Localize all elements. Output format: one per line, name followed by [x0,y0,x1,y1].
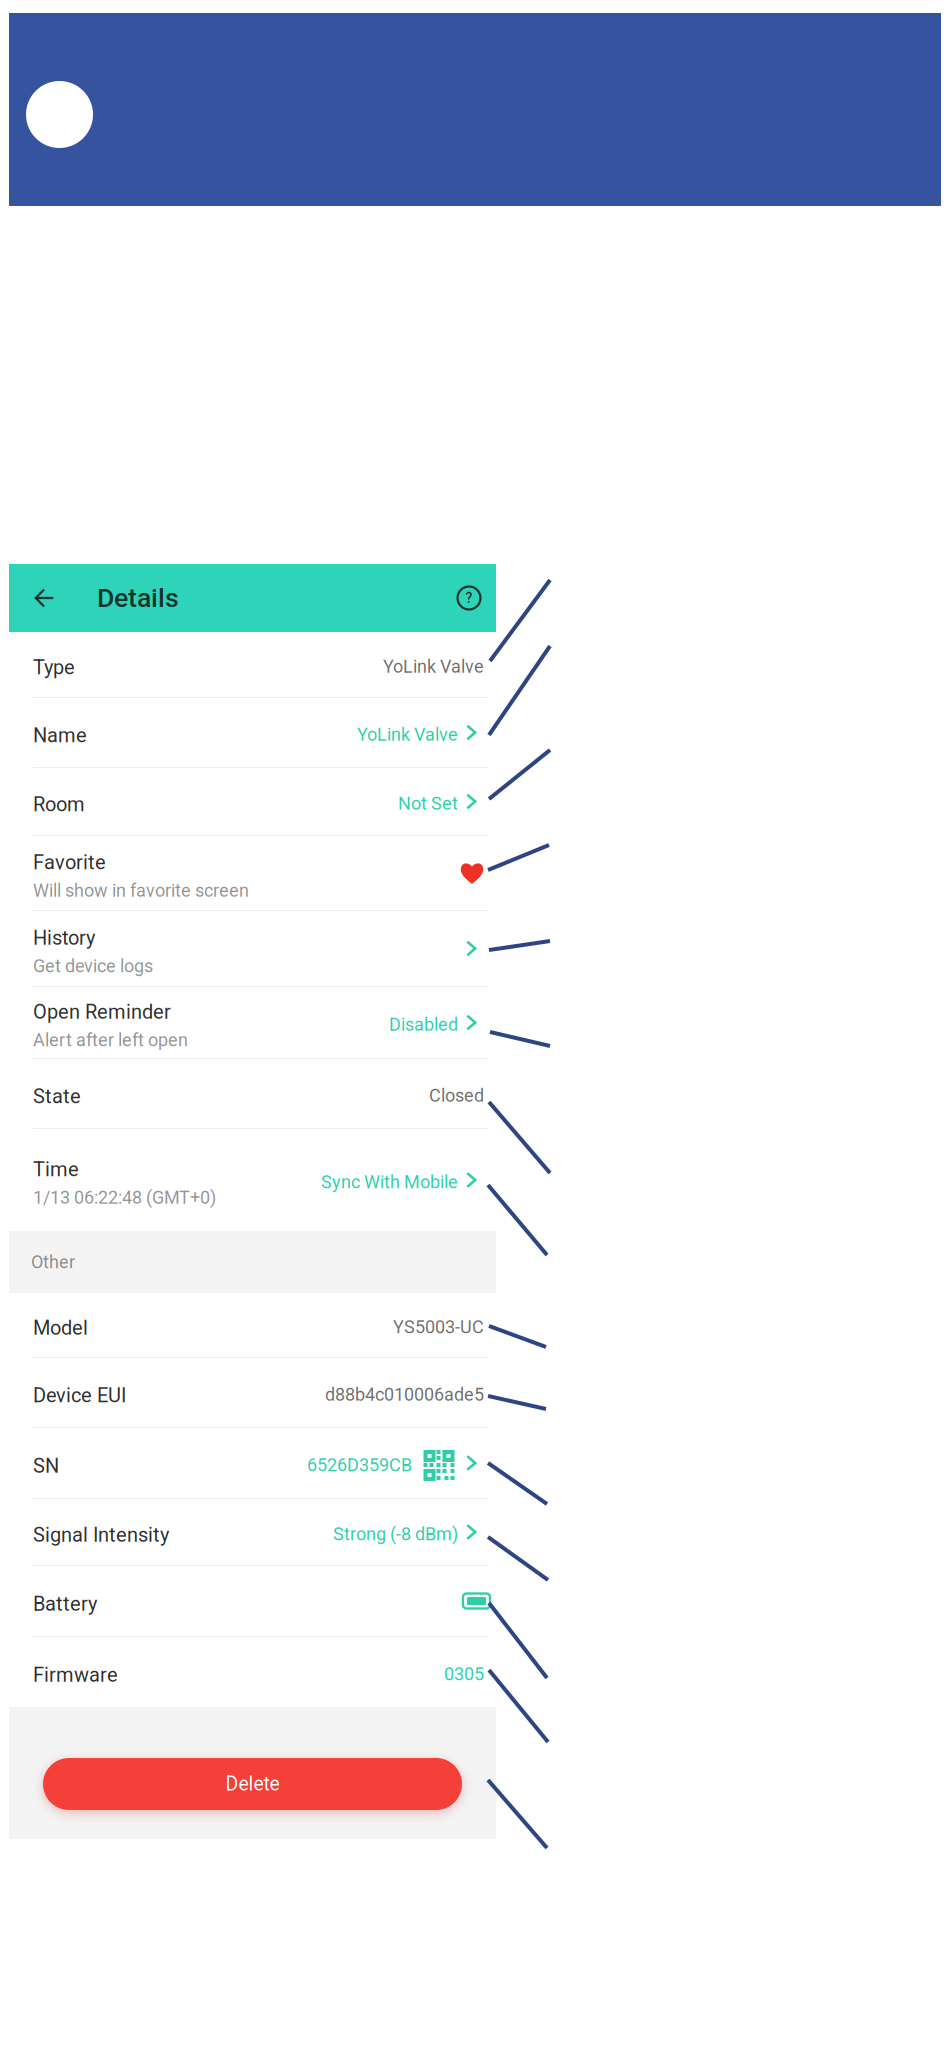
staticText: 1/13 06:22:48 (GMT+0) [33,1187,216,1208]
staticText: Room [33,793,85,816]
button[interactable]: Favorite [9,836,496,910]
button[interactable]: Signal Intensity [9,1499,496,1565]
button[interactable]: SN [9,1428,496,1498]
staticText: Device EUI [33,1384,126,1407]
staticText: Disabled [389,1014,458,1035]
staticText: YoLink Valve [383,656,484,677]
staticText: YoLink Valve [357,724,458,745]
button[interactable]: Back [31,572,58,624]
staticText: d88b4c010006ade5 [325,1384,484,1405]
button[interactable]: Delete [9,1707,496,1839]
staticText: Will show in favorite screen [33,880,249,901]
button[interactable]: State [9,1059,496,1128]
button[interactable]: Battery [9,1566,496,1636]
button[interactable]: Type [9,632,496,697]
staticText: 6526D359CB [307,1454,412,1476]
staticText: Signal Intensity [33,1523,169,1547]
staticText: YS5003-UC [393,1316,484,1338]
staticText: Details [97,582,179,614]
staticText: Sync With Mobile [321,1171,458,1193]
staticText: Closed [429,1085,484,1106]
staticText: Firmware [33,1663,118,1687]
staticText: Battery [33,1592,97,1616]
button[interactable]: Firmware [9,1637,496,1707]
staticText: Name [33,724,87,747]
staticText: Alert after left open [33,1030,188,1051]
button[interactable]: Open Reminder [9,987,496,1058]
staticText: State [33,1085,81,1108]
button[interactable]: Help [450,572,488,624]
button[interactable]: Room [9,768,496,835]
staticText: Favorite [33,851,106,874]
staticText: Delete [225,1773,279,1795]
button[interactable]: History [9,911,496,986]
button[interactable]: Name [9,698,496,767]
button[interactable]: Device EUI [9,1358,496,1427]
button[interactable]: Model [9,1293,496,1357]
staticText: 0305 [444,1663,484,1685]
staticText: Model [33,1316,88,1340]
staticText: Not Set [398,793,458,814]
staticText: History [33,926,95,950]
staticText: SN [33,1454,59,1478]
button[interactable]: Time [9,1129,496,1231]
staticText: Type [33,656,75,679]
staticText: ? [465,590,472,606]
staticText: Get device logs [33,956,153,977]
staticText: Other [31,1251,75,1273]
staticText: Open Reminder [33,1000,171,1024]
staticText: Time [33,1158,79,1181]
staticText: Strong (-8 dBm) [333,1523,458,1545]
